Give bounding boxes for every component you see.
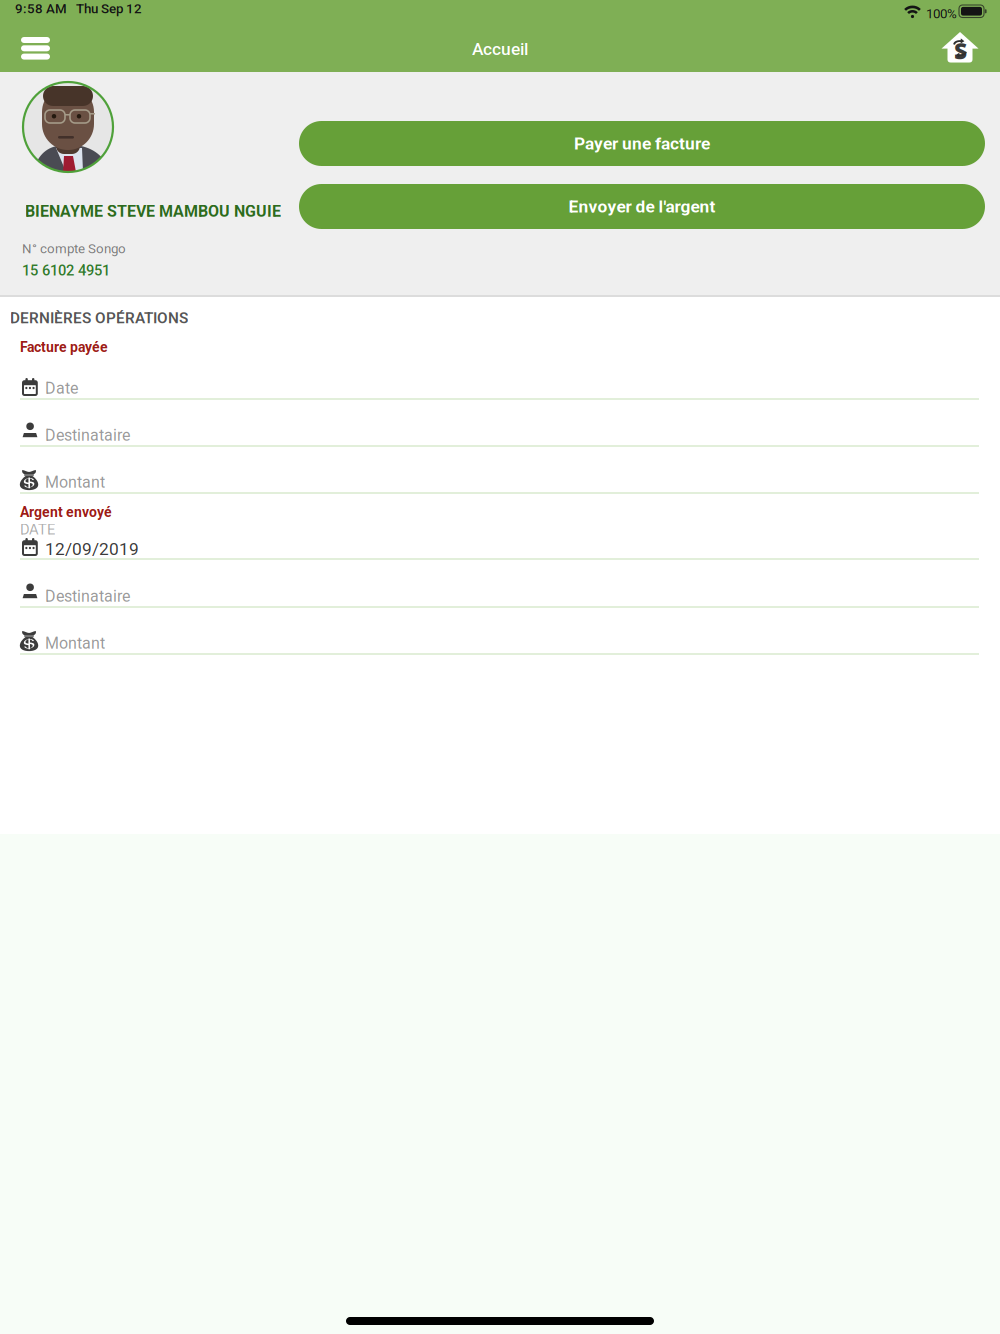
button[interactable]: Menu bbox=[0, 26, 72, 72]
staticText: Accueil bbox=[472, 39, 528, 59]
button[interactable]: Accueil bbox=[930, 24, 990, 72]
staticText: Envoyer de l'argent bbox=[568, 196, 715, 217]
staticText: 12/09/2019 bbox=[45, 539, 139, 559]
button[interactable]: Payer une facture bbox=[299, 121, 985, 166]
staticText: Facture payée bbox=[20, 339, 108, 355]
staticText: 15 6102 4951 bbox=[22, 262, 110, 279]
staticText: Payer une facture bbox=[574, 133, 710, 154]
staticText: DATE bbox=[20, 521, 55, 538]
staticText: DERNIÈRES OPÉRATIONS bbox=[10, 309, 188, 327]
staticText: 100% bbox=[926, 6, 957, 22]
staticText: 9:58 AM Thu Sep 12 bbox=[15, 1, 142, 17]
staticText: N° compte Songo bbox=[22, 241, 126, 257]
staticText: Destinataire bbox=[45, 587, 130, 606]
staticText: Destinataire bbox=[45, 426, 130, 445]
staticText: Argent envoyé bbox=[20, 504, 112, 520]
staticText: Date bbox=[45, 379, 78, 398]
staticText: Montant bbox=[45, 473, 105, 492]
staticText: S bbox=[954, 35, 967, 65]
button[interactable]: Envoyer de l'argent bbox=[299, 184, 985, 229]
staticText: Montant bbox=[45, 634, 105, 653]
staticText: BIENAYME STEVE MAMBOU NGUIE bbox=[25, 202, 281, 221]
